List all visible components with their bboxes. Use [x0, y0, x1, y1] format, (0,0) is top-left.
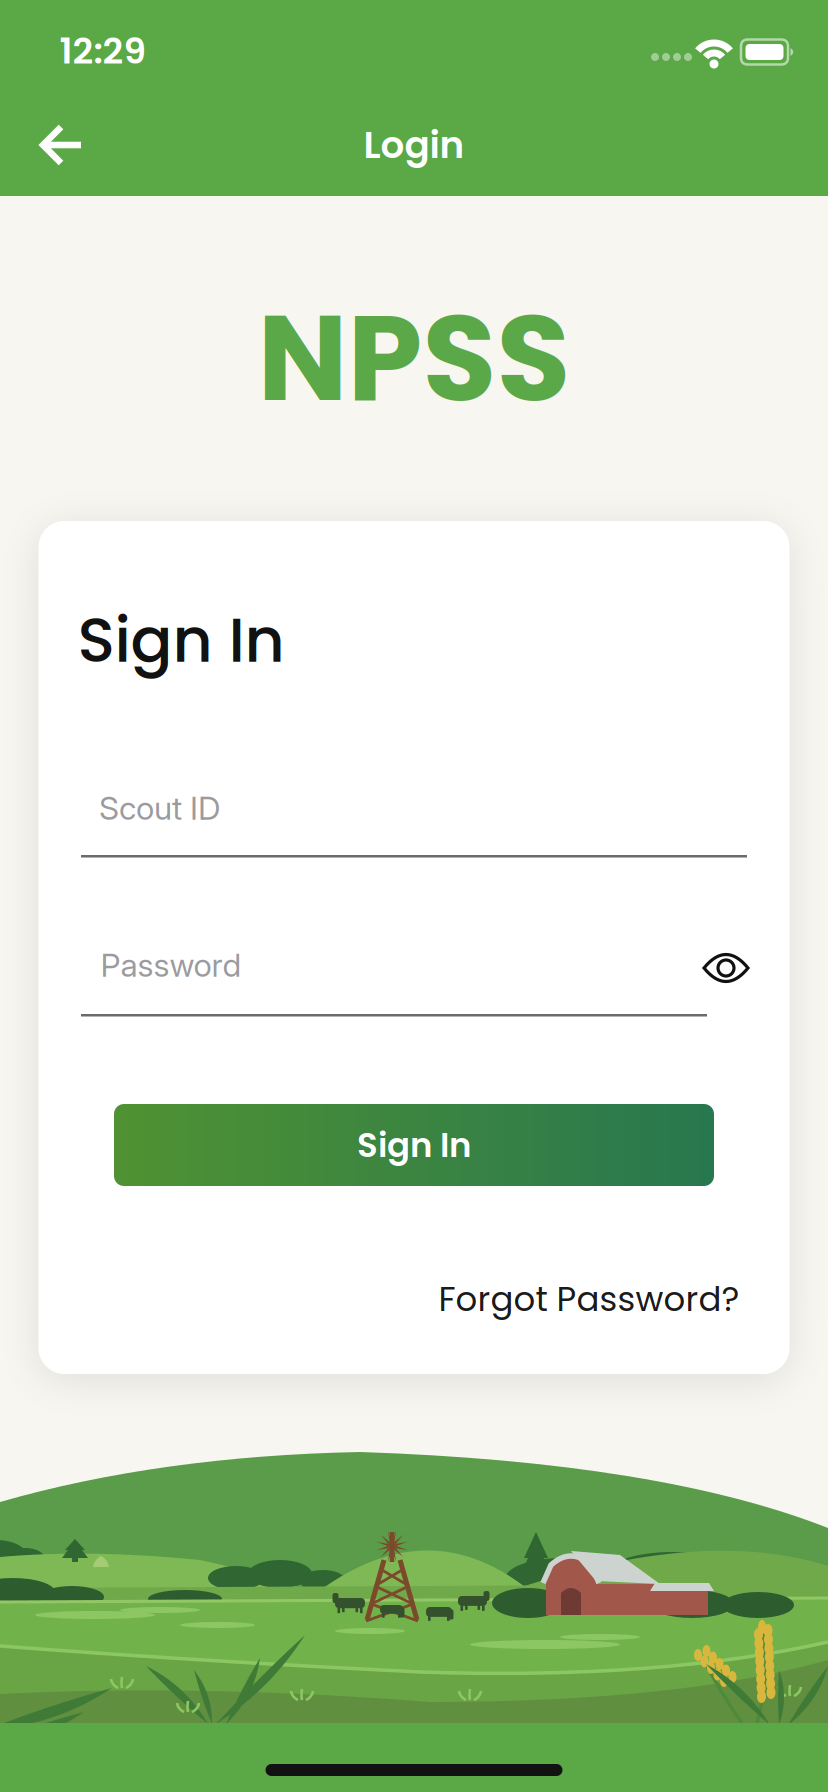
button[interactable]: Back — [33, 117, 89, 173]
staticText: Scout ID — [99, 789, 221, 827]
button[interactable]: Forgot Password? — [438, 1275, 739, 1323]
staticText: Forgot Password? — [438, 1275, 739, 1323]
button[interactable]: Sign In — [114, 1104, 714, 1186]
staticText: Sign In — [357, 1121, 471, 1169]
button[interactable]: Show password — [698, 940, 754, 996]
staticText: NPSS — [257, 274, 570, 442]
staticText: 12:29 — [59, 26, 146, 76]
staticText: Password — [100, 946, 241, 984]
staticText: Login — [363, 119, 464, 171]
staticText: Sign In — [77, 597, 284, 683]
